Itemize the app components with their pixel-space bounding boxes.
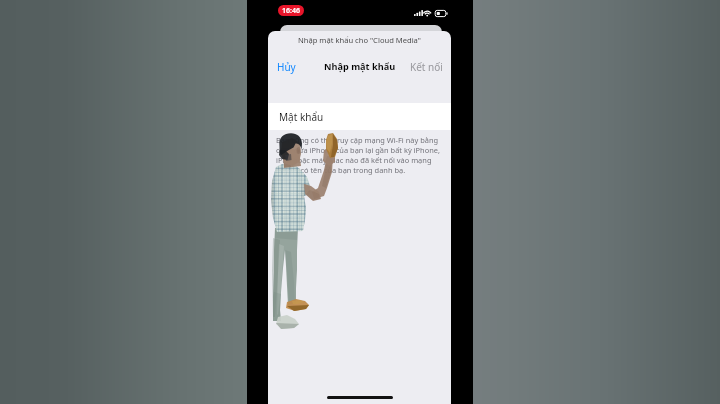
button[interactable]: Nhập mật khẩu [322,57,398,76]
staticText: Mật khẩu [279,110,324,124]
other: Signal, Wi-Fi and battery status [412,6,450,20]
staticText: Nhập mật khẩu [324,60,396,73]
button[interactable]: Hủy [275,57,298,77]
staticText: Bạn cũng có thể truy cập mạng Wi-Fi này … [276,135,443,175]
staticText: Hủy [277,60,296,74]
button[interactable]: Kết nối [408,57,445,77]
staticText: Nhập mật khẩu cho "Cloud Media" [298,35,421,45]
button[interactable]: Mật khẩu [268,103,451,130]
staticText: 16:46 [282,6,300,16]
staticText: Kết nối [410,60,443,74]
